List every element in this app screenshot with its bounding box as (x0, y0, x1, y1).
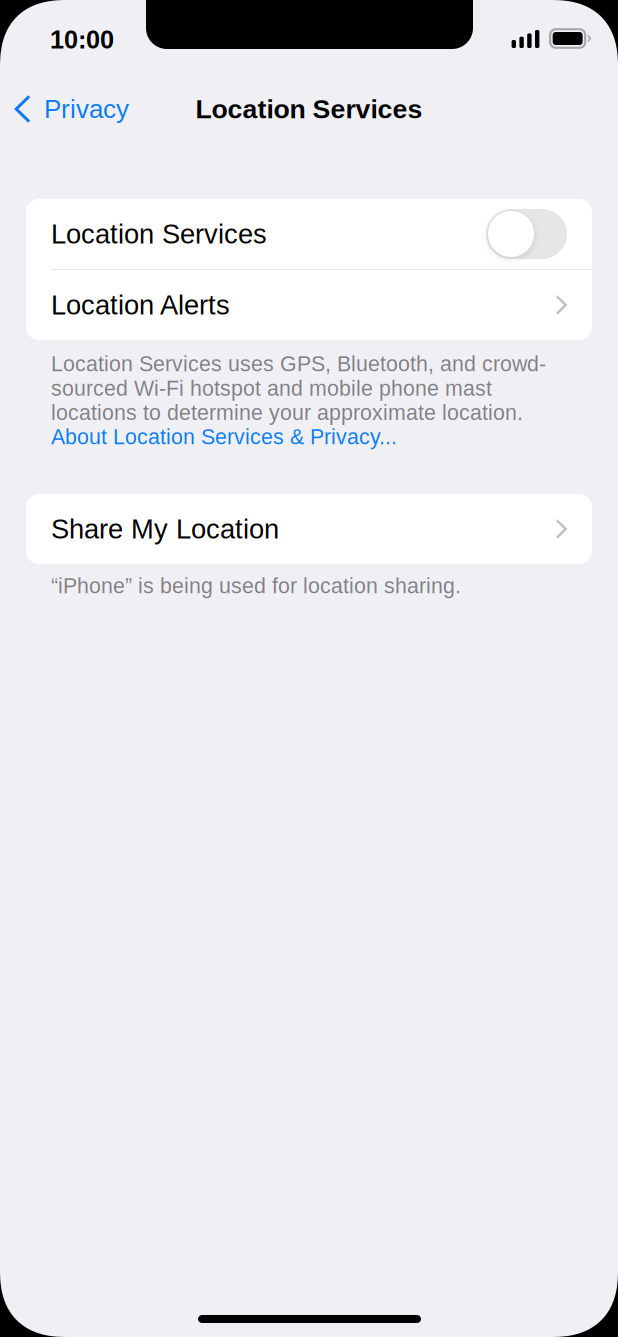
staticText: sourced Wi-Fi hotspot and mobile phone m… (51, 376, 492, 400)
staticText: Privacy (44, 94, 129, 123)
button[interactable]: About Location Services & Privacy... (51, 425, 397, 449)
button[interactable]: Share My Location (26, 494, 592, 564)
button[interactable]: Location Alerts (26, 270, 592, 340)
staticText: About Location Services & Privacy... (51, 425, 397, 449)
staticText: Location Alerts (51, 290, 230, 320)
button[interactable]: Privacy (0, 82, 143, 136)
staticText: Location Services uses GPS, Bluetooth, a… (51, 352, 546, 376)
staticText: locations to determine your approximate … (51, 401, 523, 424)
staticText: Location Services (51, 219, 267, 249)
button[interactable]: Location Services, off (486, 209, 567, 259)
staticText: Location Services (195, 94, 422, 124)
staticText: Share My Location (51, 514, 279, 544)
staticText: “iPhone” is being used for location shar… (51, 574, 461, 598)
staticText: 10:00 (50, 25, 114, 54)
